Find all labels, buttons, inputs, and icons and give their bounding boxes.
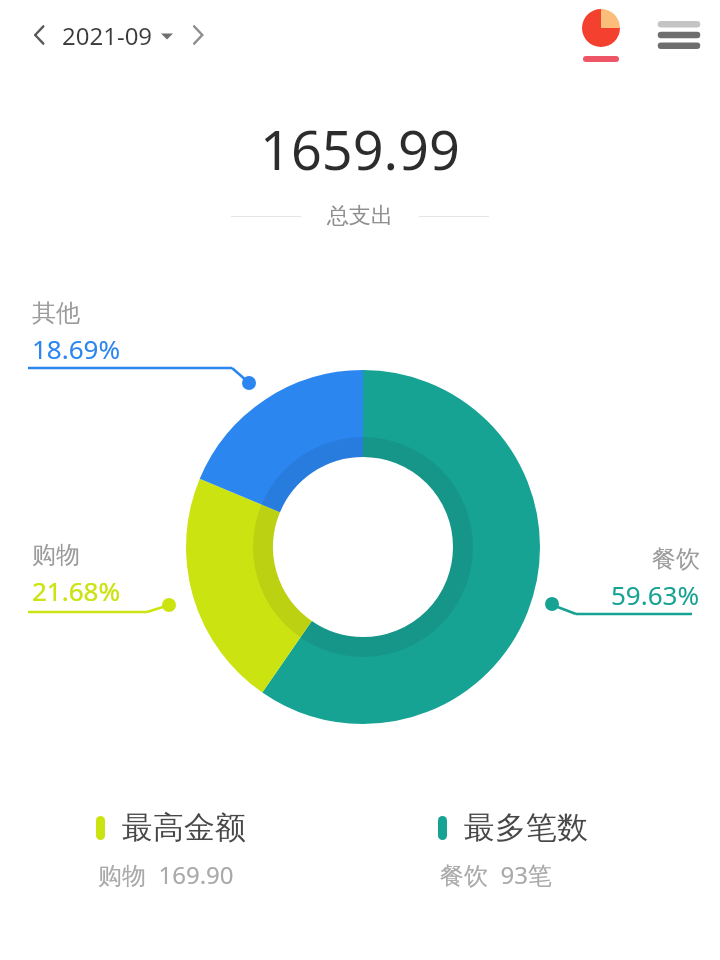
button[interactable]: Next month (179, 16, 217, 54)
staticText: 餐饮 (652, 544, 700, 574)
staticText: 购物 (32, 540, 80, 570)
staticText: 2021-09 (62, 19, 153, 52)
button[interactable]: Previous month (20, 16, 58, 54)
button[interactable]: 2021-09 (62, 19, 173, 52)
staticText: 餐饮 93笔 (440, 858, 552, 891)
staticText: 59.63% (611, 577, 700, 612)
staticText: 购物 169.90 (98, 858, 234, 891)
staticText: 最高金额 (122, 808, 246, 847)
staticText: 总支出 (327, 202, 393, 230)
staticText: 21.68% (32, 573, 121, 608)
staticText: 最多笔数 (464, 808, 588, 847)
staticText: 18.69% (32, 331, 121, 366)
button[interactable]: Chart view (574, 9, 628, 62)
staticText: 1659.99 (260, 112, 460, 186)
staticText: 其他 (32, 298, 80, 328)
button[interactable]: Menu (654, 10, 704, 60)
button[interactable]: 最高金额 (0, 808, 360, 891)
button[interactable]: 最多笔数 (360, 808, 720, 891)
